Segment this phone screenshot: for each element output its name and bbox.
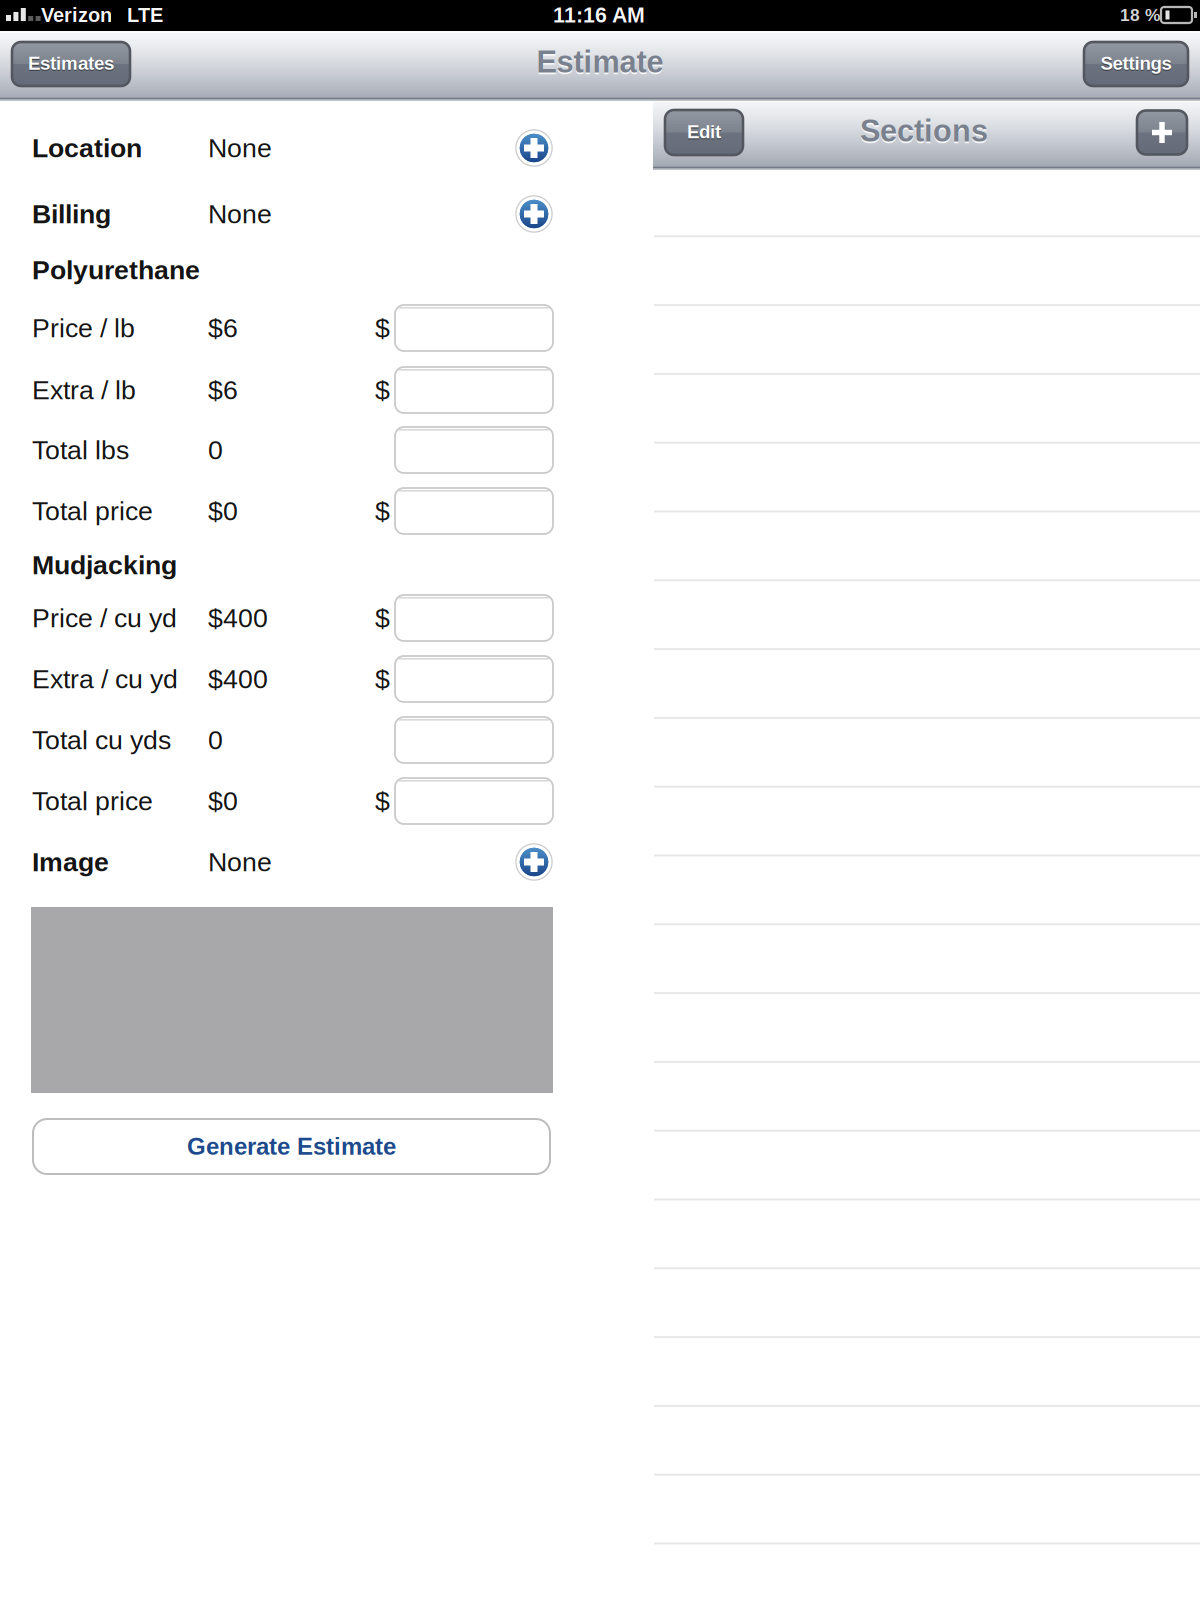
staticText: Sections (860, 115, 988, 150)
button[interactable]: Add (515, 195, 553, 233)
staticText: $ (375, 313, 390, 343)
staticText: None (208, 133, 272, 163)
staticText: Estimate (536, 45, 663, 79)
staticText: Generate Estimate (187, 1133, 396, 1160)
staticText: Billing (32, 199, 111, 229)
staticText: Total cu yds (32, 725, 171, 755)
staticText: Polyurethane (32, 255, 200, 285)
staticText: $ (375, 375, 390, 405)
staticText: Verizon (41, 4, 112, 26)
button[interactable]: Edit (665, 110, 743, 155)
staticText: Estimates (28, 54, 114, 75)
staticText: Edit (687, 123, 721, 144)
staticText: Location (32, 133, 142, 163)
button[interactable]: Add (515, 843, 553, 881)
staticText: Extra / lb (32, 375, 136, 405)
staticText: 11:16 AM (553, 3, 645, 27)
button[interactable]: Add section (1137, 110, 1187, 154)
staticText: Total lbs (32, 435, 129, 465)
staticText: $400 (208, 664, 268, 694)
staticText: Estimates (28, 53, 114, 74)
staticText: Price / lb (32, 313, 135, 343)
staticText: 0 (208, 725, 223, 755)
staticText: Sections (860, 114, 988, 148)
staticText: $ (375, 603, 390, 633)
staticText: $ (375, 786, 390, 816)
staticText: None (208, 199, 272, 229)
staticText: $0 (208, 786, 238, 816)
button[interactable]: Add (515, 129, 553, 167)
staticText: $0 (208, 496, 238, 526)
staticText: Settings (1100, 53, 1171, 74)
staticText: $ (375, 496, 390, 526)
staticText: Mudjacking (32, 550, 177, 580)
staticText: Extra / cu yd (32, 664, 178, 694)
staticText: Settings (1100, 54, 1171, 75)
staticText: $6 (208, 375, 238, 405)
staticText: Image (32, 847, 109, 877)
staticText: Total price (32, 786, 153, 816)
button[interactable]: Estimates (12, 42, 130, 86)
staticText: Edit (687, 121, 721, 142)
staticText: Estimate (536, 46, 663, 81)
staticText: $ (375, 664, 390, 694)
button[interactable]: Generate Estimate (33, 1119, 550, 1174)
staticText: Price / cu yd (32, 603, 177, 633)
staticText: LTE (127, 4, 163, 26)
staticText: Total price (32, 496, 153, 526)
staticText: 0 (208, 435, 223, 465)
button[interactable]: Settings (1084, 42, 1188, 86)
staticText: 18 % (1120, 5, 1160, 25)
staticText: $400 (208, 603, 268, 633)
staticText: None (208, 847, 272, 877)
staticText: $6 (208, 313, 238, 343)
